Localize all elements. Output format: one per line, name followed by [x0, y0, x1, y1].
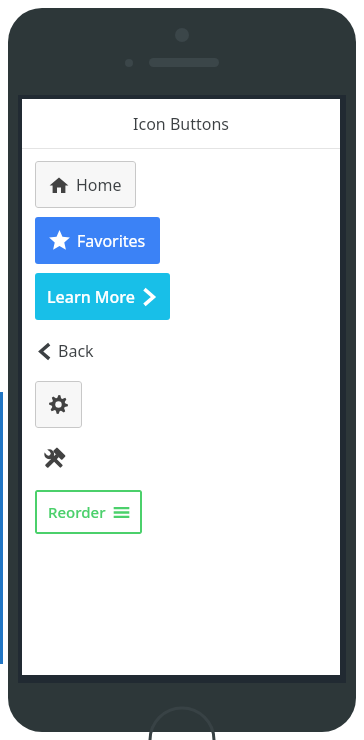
staticText: Favorites [77, 230, 146, 252]
staticText: Reorder [48, 502, 106, 522]
staticText: Icon Buttons [133, 113, 229, 135]
staticText: Back [58, 340, 94, 362]
button[interactable]: Learn More [35, 273, 170, 320]
button[interactable]: Back [35, 332, 102, 370]
button[interactable]: Home [35, 161, 136, 208]
button[interactable]: Tools [35, 440, 73, 478]
staticText: Learn More [47, 286, 135, 308]
button[interactable]: Reorder [35, 490, 142, 534]
button[interactable]: Favorites [35, 217, 160, 264]
button[interactable]: Settings [35, 381, 82, 428]
staticText: Home [76, 174, 122, 196]
